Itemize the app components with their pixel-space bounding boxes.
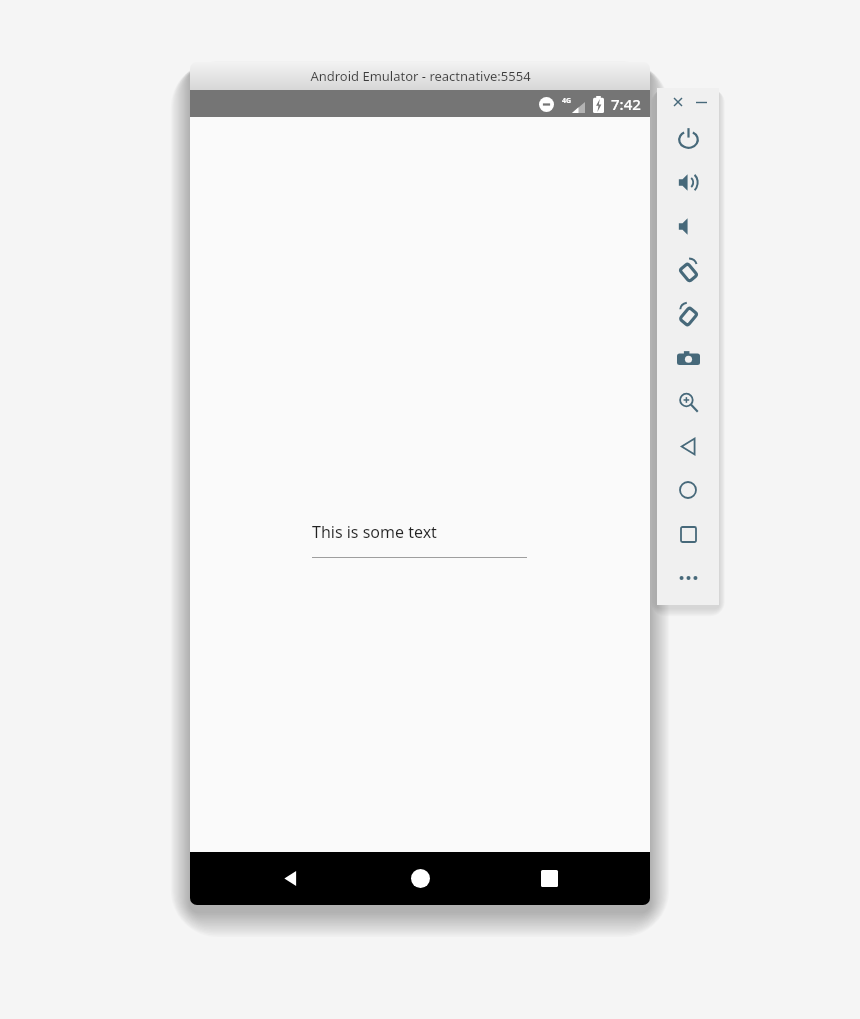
button[interactable]: Recent apps (524, 852, 574, 905)
button[interactable]: Take screenshot (657, 336, 719, 380)
button[interactable]: Home (657, 468, 719, 512)
staticText: This is some text (312, 521, 437, 543)
staticText: 4G (562, 96, 572, 106)
button[interactable]: Close (669, 93, 687, 111)
button[interactable]: Back (266, 852, 316, 905)
button[interactable]: Back (657, 424, 719, 468)
button[interactable]: Rotate left (657, 248, 719, 292)
button[interactable]: Power (657, 116, 719, 160)
button[interactable]: Home (395, 852, 445, 905)
button[interactable]: Volume up (657, 160, 719, 204)
button[interactable]: Volume down (657, 204, 719, 248)
button[interactable]: Minimize (692, 93, 710, 111)
button[interactable]: More (657, 556, 719, 600)
button[interactable]: This is some text (312, 521, 527, 558)
button[interactable]: Zoom (657, 380, 719, 424)
staticText: Android Emulator - reactnative:5554 (310, 67, 531, 85)
staticText: 7:42 (611, 94, 641, 114)
button[interactable]: Overview (657, 512, 719, 556)
button[interactable]: Rotate right (657, 292, 719, 336)
